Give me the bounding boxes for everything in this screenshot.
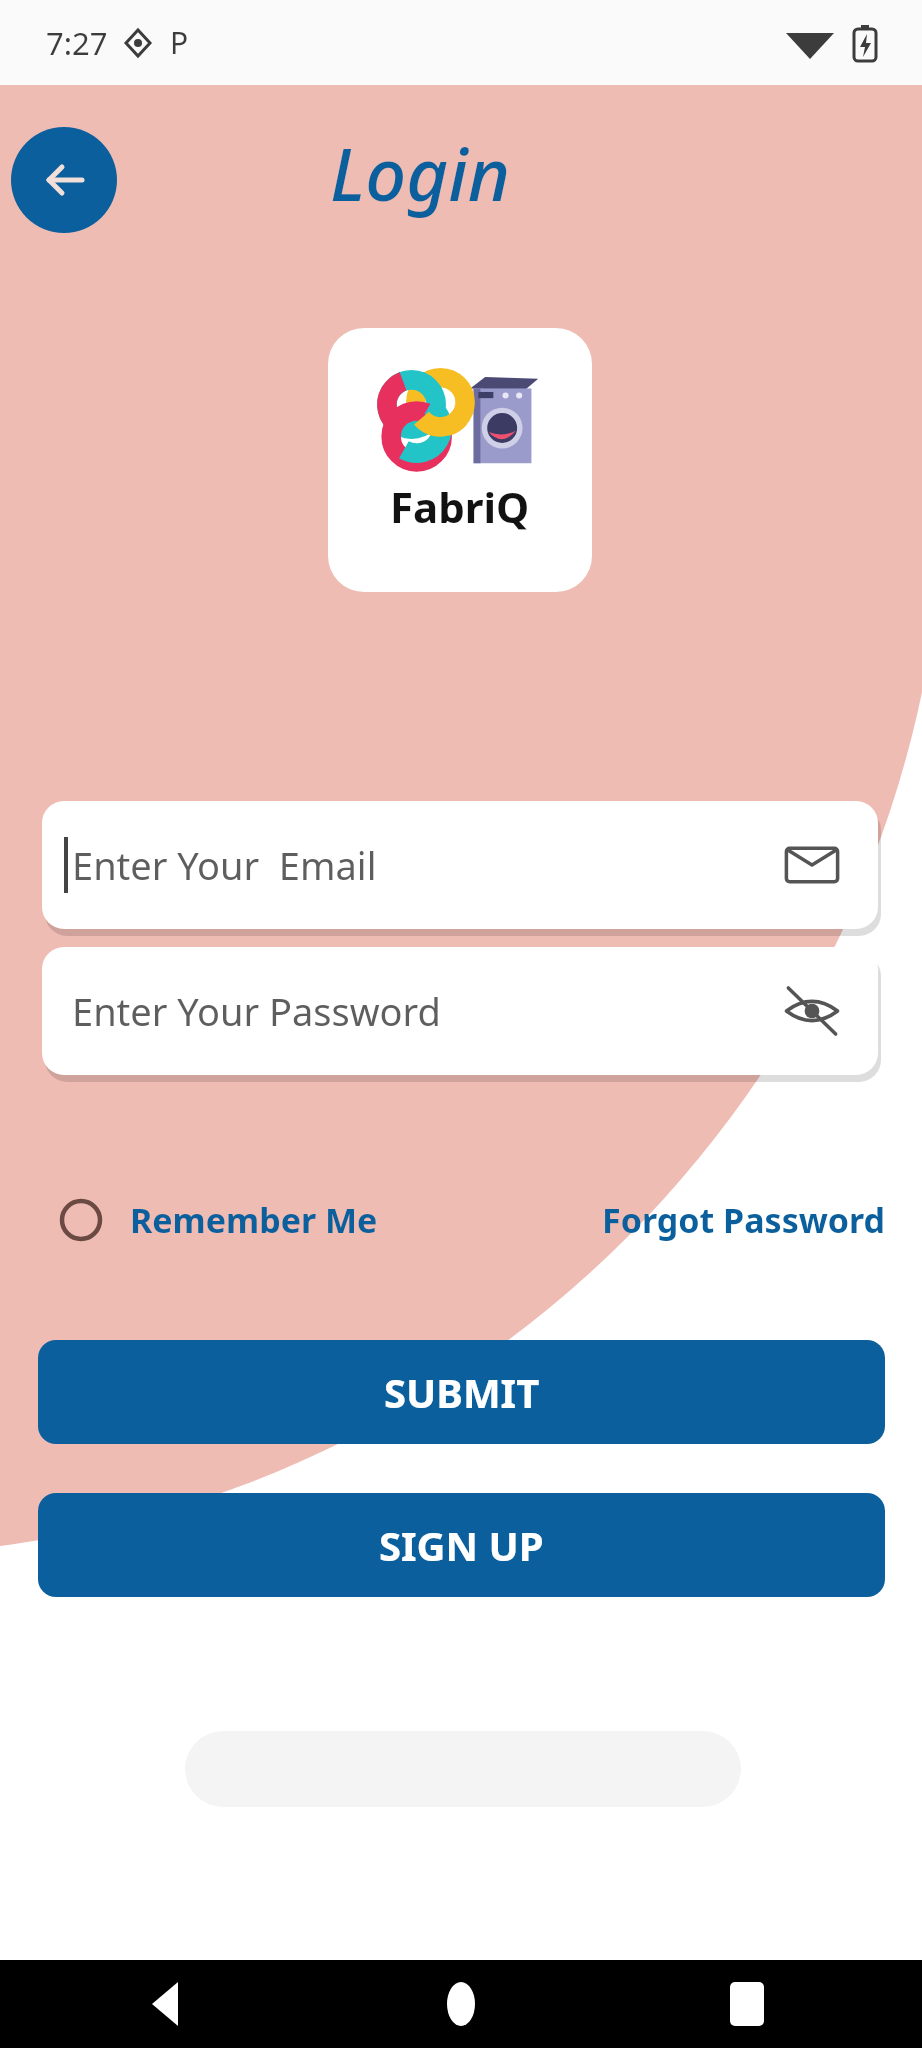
button[interactable]: Enter Your Password <box>42 947 878 1075</box>
staticText: P <box>170 22 189 63</box>
staticText: SUBMIT <box>384 1365 540 1419</box>
button[interactable]: Back <box>11 127 117 233</box>
button[interactable]: Enter Your Email <box>42 801 878 929</box>
staticText: Login <box>330 124 510 222</box>
staticText: Remember Me <box>130 1197 378 1243</box>
staticText: SIGN UP <box>379 1518 544 1572</box>
button[interactable]: Forgot Password <box>602 1197 886 1243</box>
staticText: Enter Your Password <box>72 985 441 1037</box>
staticText: Forgot Password <box>602 1197 886 1243</box>
button[interactable]: SUBMIT <box>38 1340 885 1444</box>
button[interactable]: Password input <box>780 979 844 1043</box>
button[interactable]: Remember Me <box>58 1197 378 1243</box>
staticText: 7:27 <box>46 22 108 64</box>
staticText: FabriQ <box>390 478 530 535</box>
staticText: Enter Your Email <box>72 839 377 891</box>
button[interactable]: SIGN UP <box>38 1493 885 1597</box>
button[interactable]: Email input <box>780 833 844 897</box>
button[interactable]: FabriQ <box>328 328 592 592</box>
